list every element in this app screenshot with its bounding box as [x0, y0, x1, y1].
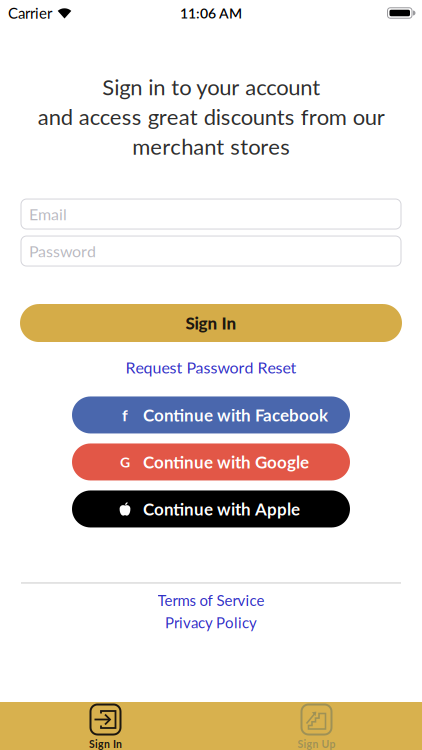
staticText: Sign In	[185, 313, 236, 333]
staticText: Carrier	[8, 4, 52, 22]
staticText: 11:06 AM	[180, 5, 242, 21]
staticText: f	[122, 406, 128, 424]
staticText: Continue with Google	[143, 452, 309, 472]
button[interactable]: Terms of Service	[157, 591, 264, 609]
staticText: Password	[29, 242, 96, 260]
button[interactable]: Continue with Apple	[72, 490, 350, 527]
button[interactable]: Sign Up	[211, 702, 422, 750]
staticText: Email	[29, 205, 67, 223]
staticText: Sign Up	[297, 738, 335, 750]
button[interactable]: f	[72, 396, 350, 433]
staticText: Sign In	[89, 738, 122, 750]
button[interactable]: Sign In	[0, 702, 211, 750]
button[interactable]: Request Password Reset	[125, 358, 296, 376]
button[interactable]: Sign In	[0, 304, 422, 342]
staticText: Request Password Reset	[125, 358, 296, 376]
button[interactable]: Password	[21, 236, 401, 266]
staticText: Continue with Apple	[143, 499, 300, 519]
staticText: Sign in to your account and access great…	[37, 74, 384, 159]
button[interactable]: G	[72, 443, 350, 480]
staticText: Privacy Policy	[165, 614, 257, 631]
staticText: Terms of Service	[157, 591, 264, 609]
staticText: G	[120, 454, 130, 470]
staticText: Continue with Facebook	[143, 405, 328, 425]
button[interactable]: Privacy Policy	[165, 614, 257, 631]
button[interactable]: Email	[21, 199, 401, 229]
